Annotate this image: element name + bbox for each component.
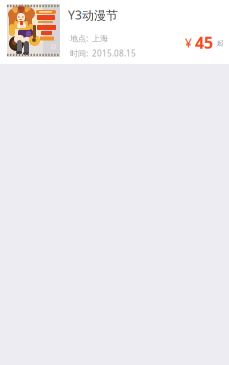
staticText: 时间: 2015.08.15: [70, 48, 136, 59]
staticText: 地点: 上海: [70, 33, 108, 44]
staticText: 45: [195, 32, 213, 53]
staticText: ¥: [185, 35, 192, 51]
staticText: Y3动漫节: [68, 7, 118, 23]
staticText: 起: [217, 39, 224, 47]
button[interactable]: Y3动漫节: [0, 0, 229, 64]
